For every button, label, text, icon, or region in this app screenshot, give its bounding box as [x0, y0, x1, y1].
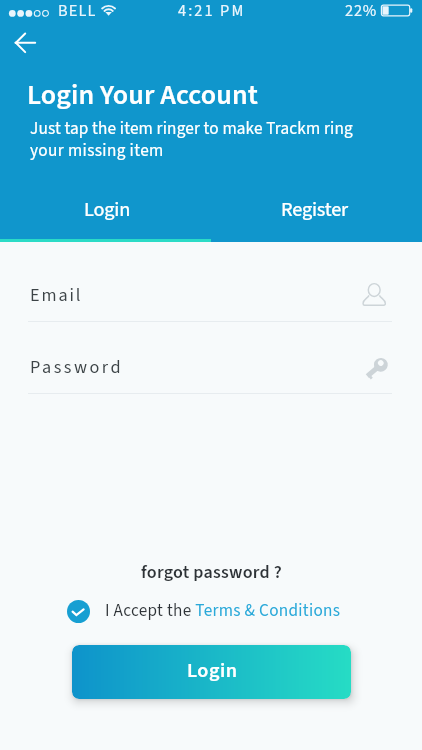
- button[interactable]: Accept Terms and Conditions: [67, 600, 90, 623]
- staticText: Login: [187, 656, 238, 685]
- button[interactable]: Register: [211, 190, 422, 241]
- button[interactable]: Back: [6, 23, 46, 63]
- staticText: Email: [30, 282, 83, 308]
- button[interactable]: Login: [0, 190, 211, 241]
- button[interactable]: Login: [72, 645, 351, 699]
- staticText: Login: [84, 195, 131, 224]
- staticText: Register: [281, 195, 348, 224]
- button[interactable]: Email: [28, 276, 394, 321]
- button[interactable]: I Accept the Terms & Conditions: [105, 598, 341, 622]
- staticText: Login Your Account: [27, 75, 258, 115]
- staticText: 4:21 PM: [178, 0, 246, 22]
- button[interactable]: forgot password ?: [141, 560, 283, 586]
- button[interactable]: Password: [28, 348, 394, 393]
- staticText: BELL: [58, 0, 97, 22]
- staticText: Just tap the item ringer to make Trackm …: [30, 116, 353, 140]
- staticText: 22%: [345, 0, 378, 22]
- staticText: Password: [30, 354, 124, 380]
- staticText: your missing item: [30, 138, 164, 162]
